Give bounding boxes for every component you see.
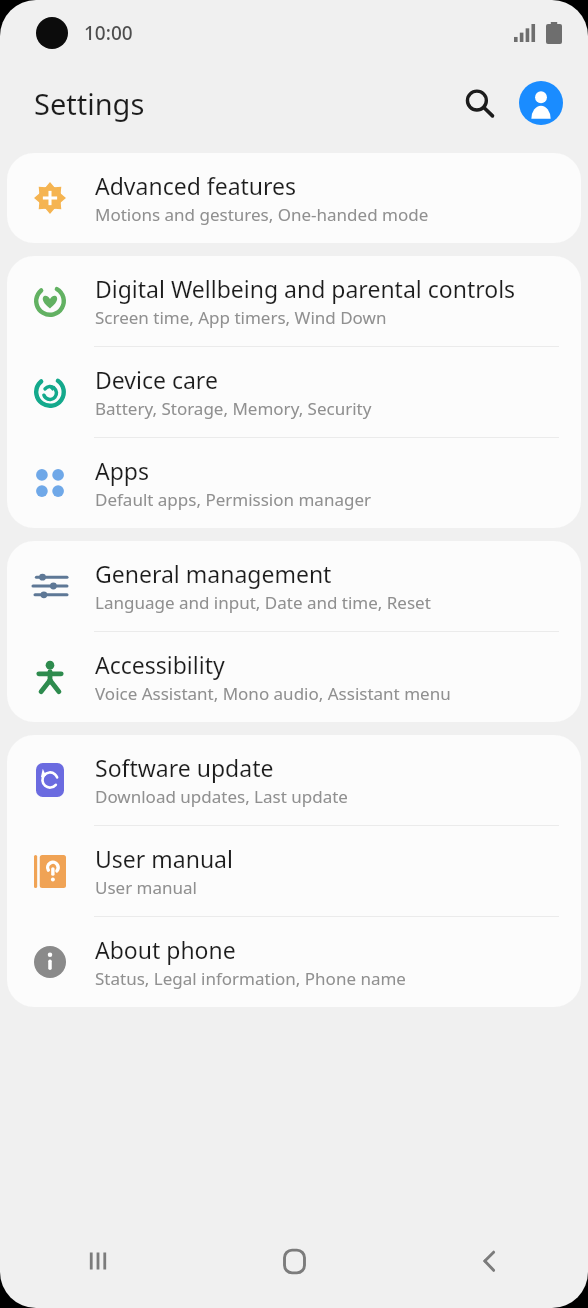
staticText: Battery, Storage, Memory, Security <box>95 397 372 420</box>
button[interactable]: Software update <box>7 735 581 825</box>
button[interactable]: Back <box>392 1214 588 1308</box>
button[interactable]: Accessibility <box>7 632 581 722</box>
staticText: Advanced features <box>95 170 297 201</box>
staticText: Default apps, Permission manager <box>95 488 371 511</box>
staticText: Software update <box>95 752 274 783</box>
staticText: Settings <box>34 84 145 123</box>
staticText: General management <box>95 558 332 589</box>
staticText: User manual <box>95 876 197 899</box>
staticText: Accessibility <box>95 649 225 680</box>
button[interactable]: Digital Wellbeing and parental controls <box>7 256 581 346</box>
staticText: Apps <box>95 455 150 486</box>
staticText: User manual <box>95 843 233 874</box>
button[interactable]: Home <box>196 1214 392 1308</box>
button[interactable]: General management <box>7 541 581 631</box>
staticText: Status, Legal information, Phone name <box>95 967 406 990</box>
staticText: Device care <box>95 364 218 395</box>
staticText: Language and input, Date and time, Reset <box>95 591 431 614</box>
staticText: 10:00 <box>84 20 133 46</box>
button[interactable]: Device care <box>7 347 581 437</box>
button[interactable]: Recents <box>0 1214 196 1308</box>
button[interactable]: Account <box>514 76 568 130</box>
button[interactable]: Apps <box>7 438 581 528</box>
staticText: About phone <box>95 934 236 965</box>
staticText: Digital Wellbeing and parental controls <box>95 273 516 304</box>
staticText: Voice Assistant, Mono audio, Assistant m… <box>95 682 451 705</box>
button[interactable]: About phone <box>7 917 581 1007</box>
button[interactable]: Search <box>452 76 506 130</box>
staticText: Screen time, App timers, Wind Down <box>95 306 387 329</box>
button[interactable]: User manual <box>7 826 581 916</box>
staticText: Motions and gestures, One-handed mode <box>95 203 429 226</box>
button[interactable]: Advanced features <box>7 153 581 243</box>
staticText: Download updates, Last update <box>95 785 348 808</box>
